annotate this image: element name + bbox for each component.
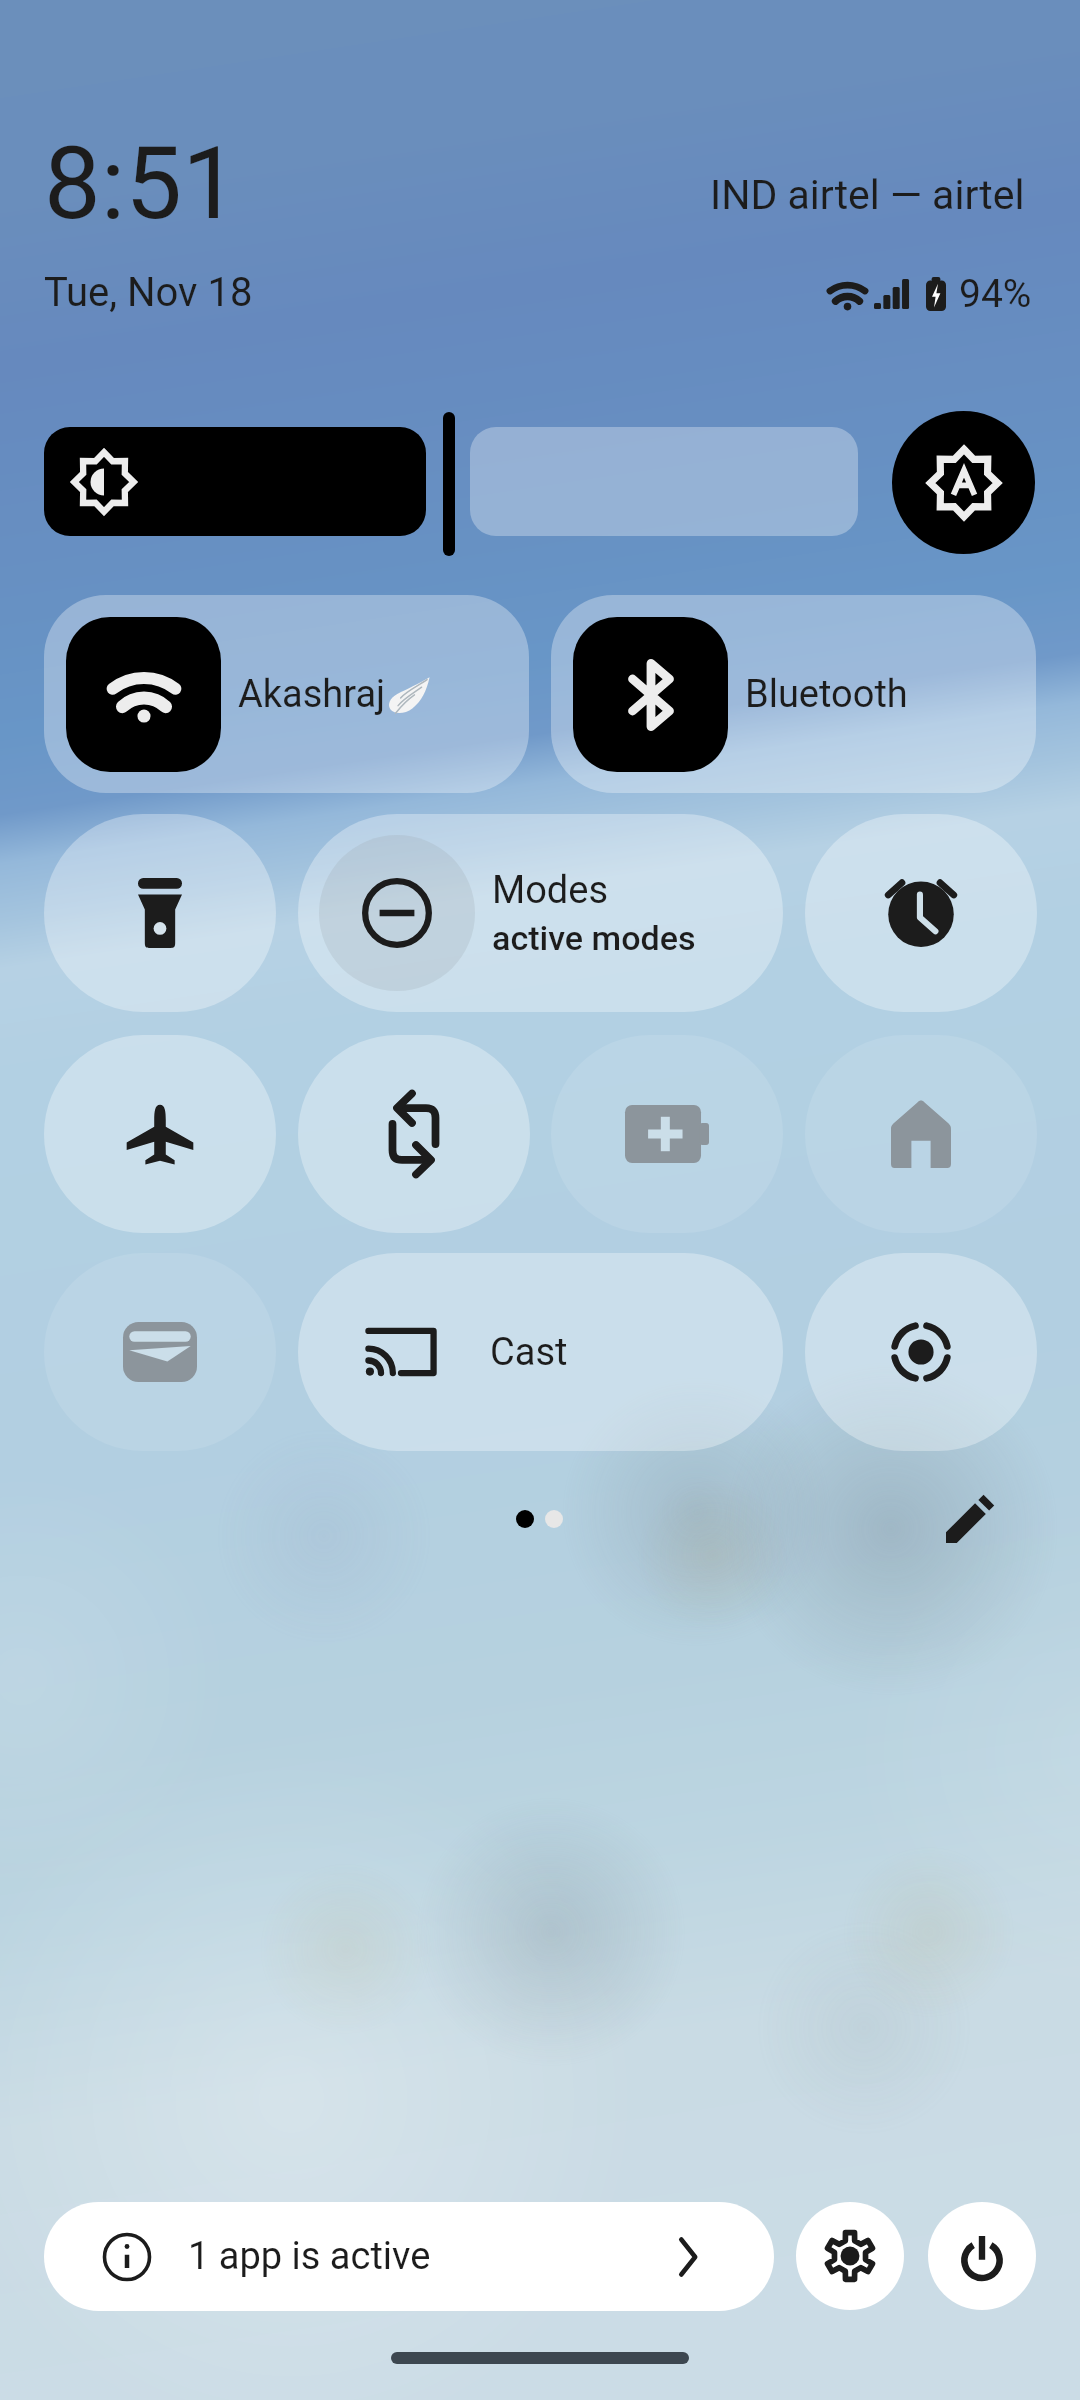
button[interactable]: Auto brightness bbox=[892, 411, 1035, 554]
button[interactable]: 1 app is active bbox=[44, 2202, 774, 2311]
button[interactable]: Screen record bbox=[805, 1253, 1037, 1451]
button[interactable]: Wallet bbox=[44, 1253, 276, 1451]
button[interactable]: Modes bbox=[298, 814, 783, 1012]
button[interactable]: Edit tiles bbox=[932, 1480, 1008, 1556]
button[interactable]: Flashlight bbox=[44, 814, 276, 1012]
button[interactable]: Alarm bbox=[805, 814, 1037, 1012]
staticText: Modes bbox=[492, 868, 609, 913]
button[interactable]: Settings bbox=[796, 2202, 904, 2310]
staticText: 8:51 bbox=[44, 124, 239, 242]
button[interactable]: Airplane mode bbox=[44, 1035, 276, 1233]
button[interactable]: Bluetooth bbox=[551, 595, 1036, 793]
button[interactable]: Home bbox=[805, 1035, 1037, 1233]
button[interactable]: Power bbox=[928, 2202, 1036, 2310]
staticText: Tue, Nov 18 bbox=[44, 269, 253, 316]
button[interactable] bbox=[470, 427, 858, 536]
staticText: active modes bbox=[492, 918, 696, 958]
button[interactable]: Cast bbox=[298, 1253, 783, 1451]
button[interactable]: Auto rotate bbox=[298, 1035, 530, 1233]
staticText: Bluetooth bbox=[745, 672, 908, 717]
button[interactable]: Akashraj bbox=[44, 595, 529, 793]
button[interactable]: Battery saver bbox=[551, 1035, 783, 1233]
staticText: Akashraj bbox=[238, 672, 386, 717]
staticText: IND airtel — airtel bbox=[710, 171, 1025, 219]
staticText: 1 app is active bbox=[188, 2234, 431, 2279]
staticText: Cast bbox=[490, 1330, 568, 1375]
staticText: 94% bbox=[959, 271, 1032, 317]
